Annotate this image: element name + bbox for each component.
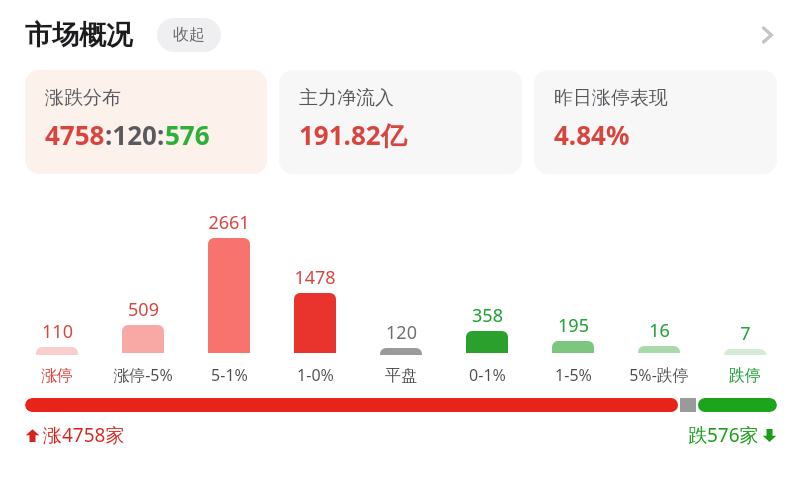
staticText: 4758 — [45, 117, 105, 152]
button[interactable]: 509 — [100, 174, 186, 390]
staticText: 涨停 — [41, 366, 73, 386]
button[interactable]: More — [740, 8, 794, 62]
staticText: 110 — [42, 319, 73, 344]
staticText: 576 — [165, 117, 210, 152]
button[interactable]: 16 — [616, 174, 702, 390]
staticText: 涨跌分布 — [45, 86, 121, 110]
staticText: 平盘 — [385, 366, 417, 386]
staticText: 4.84% — [554, 117, 630, 152]
button[interactable]: 收起 — [157, 18, 221, 52]
staticText: 1-5% — [555, 364, 592, 386]
button[interactable]: 358 — [444, 174, 530, 390]
button[interactable]: 跌576家 — [688, 422, 777, 448]
button[interactable]: 110 — [14, 174, 100, 390]
staticText: 1-0% — [297, 364, 334, 386]
staticText: 涨4758家 — [43, 422, 125, 448]
button[interactable] — [25, 398, 777, 412]
staticText: 2661 — [208, 210, 250, 235]
staticText: 昨日涨停表现 — [554, 86, 668, 110]
staticText: 跌停 — [729, 366, 761, 386]
button[interactable]: 7 — [702, 174, 788, 390]
staticText: 509 — [128, 297, 159, 322]
button[interactable]: 昨日涨停表现 — [534, 70, 777, 174]
staticText: 5-1% — [211, 364, 248, 386]
button[interactable]: 主力净流入 — [279, 70, 522, 174]
button[interactable]: 2661 — [186, 174, 272, 390]
staticText: 收起 — [173, 25, 205, 45]
staticText: 358 — [472, 303, 503, 328]
staticText: 191.82亿 — [299, 117, 407, 153]
staticText: 跌576家 — [688, 422, 759, 448]
staticText: 0-1% — [469, 364, 506, 386]
button[interactable]: 120 — [358, 174, 444, 390]
staticText: 市场概况 — [25, 18, 133, 52]
staticText: 1478 — [294, 265, 336, 290]
button[interactable]: 1478 — [272, 174, 358, 390]
staticText: :120: — [105, 117, 165, 152]
staticText: 16 — [649, 318, 670, 343]
staticText: 5%-跌停 — [629, 364, 689, 386]
staticText: 7 — [740, 321, 751, 346]
button[interactable]: 涨4758家 — [25, 422, 125, 448]
staticText: 主力净流入 — [299, 86, 394, 110]
staticText: 195 — [558, 313, 589, 338]
button[interactable]: 涨跌分布 — [25, 70, 267, 174]
staticText: 120 — [386, 320, 417, 345]
button[interactable]: 195 — [530, 174, 616, 390]
staticText: 涨停-5% — [113, 364, 173, 386]
